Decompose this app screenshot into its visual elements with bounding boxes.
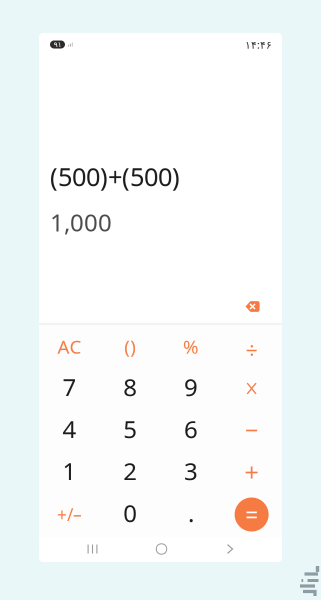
staticText: 8 — [123, 371, 137, 403]
staticText: 6 — [184, 413, 198, 445]
button[interactable]: +/– — [39, 493, 100, 535]
button[interactable]: 9 — [160, 367, 221, 409]
button[interactable]: 5 — [100, 409, 161, 451]
staticText: 7 — [62, 371, 76, 403]
button[interactable]: 8 — [100, 367, 161, 409]
button[interactable]: Delete — [244, 300, 260, 312]
button[interactable]: 4 — [39, 409, 100, 451]
button[interactable]: Subtract — [221, 409, 282, 451]
staticText: = — [245, 499, 258, 529]
button[interactable]: Add — [221, 451, 282, 493]
button[interactable]: . — [160, 493, 221, 535]
button[interactable]: () — [100, 325, 161, 367]
staticText: 0 — [123, 497, 137, 529]
button[interactable]: = — [221, 493, 282, 535]
staticText: % — [183, 334, 199, 359]
button[interactable]: Multiply — [221, 367, 282, 409]
staticText: ۱۴:۴۶ — [245, 37, 272, 52]
staticText: 2 — [123, 455, 137, 487]
staticText: 1,000 — [50, 206, 112, 238]
staticText: 1 — [62, 455, 76, 487]
button[interactable]: Home — [134, 537, 188, 560]
staticText: . — [188, 497, 194, 529]
staticText: +/– — [57, 503, 82, 526]
button[interactable]: Divide — [221, 325, 282, 367]
staticText: AC — [57, 334, 81, 359]
staticText: 9 — [184, 371, 198, 403]
button[interactable]: 6 — [160, 409, 221, 451]
button[interactable]: Back — [203, 537, 257, 560]
button[interactable]: Recents — [66, 537, 120, 560]
button[interactable]: 7 — [39, 367, 100, 409]
button[interactable]: % — [160, 325, 221, 367]
button[interactable]: 3 — [160, 451, 221, 493]
staticText: () — [124, 334, 136, 359]
staticText: 4 — [62, 413, 76, 445]
button[interactable]: 0 — [100, 493, 161, 535]
button[interactable]: 1 — [39, 451, 100, 493]
button[interactable]: 2 — [100, 451, 161, 493]
staticText: 3 — [184, 455, 198, 487]
staticText: ۹۱ — [53, 40, 61, 49]
button[interactable]: AC — [39, 325, 100, 367]
staticText: 5 — [123, 413, 137, 445]
staticText: (500)+(500) — [50, 159, 180, 193]
